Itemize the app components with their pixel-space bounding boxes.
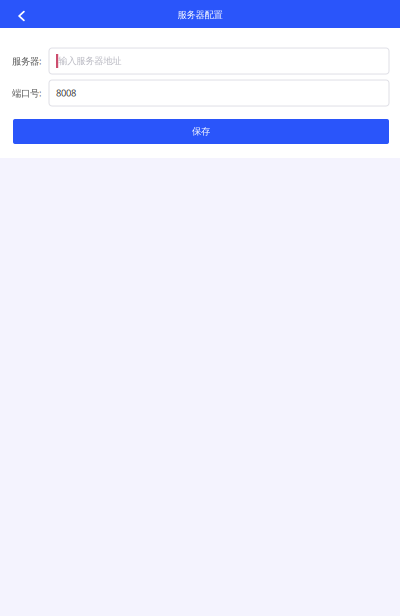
staticText: 服务器配置 — [177, 9, 222, 21]
staticText: 保存 — [192, 126, 210, 137]
staticText: 服务器: — [12, 55, 42, 67]
staticText: 输入服务器地址 — [58, 55, 121, 67]
staticText: 8008 — [56, 87, 76, 99]
button[interactable]: Back — [0, 0, 43, 28]
staticText: 端口号: — [12, 87, 42, 99]
button[interactable]: 保存 — [13, 119, 389, 144]
